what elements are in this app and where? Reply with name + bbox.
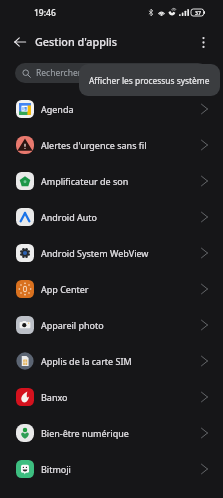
staticText: Applis de la carte SIM xyxy=(41,355,201,367)
button[interactable]: Bien-être numérique xyxy=(0,415,223,451)
staticText: App Center xyxy=(41,283,201,295)
staticText: Amplificateur de son xyxy=(41,175,201,187)
button[interactable]: Retour xyxy=(7,29,33,55)
staticText: Android Auto xyxy=(41,211,201,223)
button[interactable]: Applis de la carte SIM xyxy=(0,343,223,379)
button[interactable]: Bitmoji xyxy=(0,451,223,487)
staticText: 37 xyxy=(195,9,201,16)
staticText: Afficher les processus système xyxy=(89,75,210,86)
staticText: Android System WebView xyxy=(41,247,201,259)
button[interactable]: Appareil photo xyxy=(0,307,223,343)
button[interactable]: Android System WebView xyxy=(0,235,223,271)
staticText: Agenda xyxy=(41,103,201,115)
button[interactable]: Rechercher xyxy=(15,63,208,83)
staticText: Gestion d'applis xyxy=(35,34,117,49)
staticText: Banxo xyxy=(41,391,201,403)
staticText: Alertes d'urgence sans fil xyxy=(41,139,201,151)
button[interactable]: Plus d'options xyxy=(190,29,216,55)
staticText: Appareil photo xyxy=(41,319,201,331)
button[interactable]: Alertes d'urgence sans fil xyxy=(0,127,223,163)
button[interactable]: Android Auto xyxy=(0,199,223,235)
button[interactable]: App Center xyxy=(0,271,223,307)
button[interactable]: Agenda xyxy=(0,91,223,127)
staticText: 19:46 xyxy=(34,7,56,19)
button[interactable]: Banxo xyxy=(0,379,223,415)
staticText: Bitmoji xyxy=(41,463,201,475)
button[interactable]: Amplificateur de son xyxy=(0,163,223,199)
staticText: Rechercher xyxy=(36,67,82,79)
staticText: Bien-être numérique xyxy=(41,427,201,439)
